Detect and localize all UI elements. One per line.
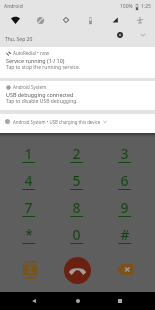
button[interactable]: 9	[103, 198, 145, 222]
staticText: 0	[72, 225, 81, 244]
staticText: AutoRedial • now	[13, 50, 49, 56]
staticText: 9	[120, 198, 129, 217]
staticText: 4	[24, 171, 33, 190]
button[interactable]: Backspace	[115, 263, 135, 276]
button[interactable]: Auto-rotate	[55, 13, 77, 27]
button[interactable]: End call	[64, 257, 91, 284]
staticText: Tap to stop the running service.	[6, 64, 81, 71]
button[interactable]: 8	[55, 198, 97, 222]
staticText: *	[25, 225, 33, 244]
button[interactable]: 4	[7, 171, 49, 195]
staticText: Tap to disable USB debugging.	[6, 98, 78, 105]
button[interactable]: Android System	[0, 81, 155, 110]
button[interactable]: 2	[55, 144, 97, 168]
staticText: 1	[24, 144, 33, 163]
staticText: 1:25	[141, 3, 151, 10]
staticText: 100%	[120, 3, 133, 10]
button[interactable]: Contacts	[22, 259, 38, 281]
button[interactable]: AutoRedial • now	[0, 47, 155, 78]
button[interactable]: 6	[103, 171, 145, 195]
button[interactable]: Home	[69, 293, 87, 309]
staticText: Android	[4, 3, 23, 10]
button[interactable]: 7	[7, 198, 49, 222]
button[interactable]: Recents	[111, 293, 129, 309]
button[interactable]: Back	[25, 293, 43, 309]
button[interactable]: Settings	[114, 29, 125, 40]
staticText: 6	[120, 171, 129, 190]
staticText: Android System • USB charging this devic…	[13, 119, 101, 125]
button[interactable]: 3	[103, 144, 145, 168]
button[interactable]: Android System • USB charging this devic…	[0, 114, 155, 133]
staticText: Service running (1 / 10)	[6, 57, 65, 64]
staticText: 8	[72, 198, 81, 217]
button[interactable]: 0	[55, 225, 97, 249]
button[interactable]: Battery saver	[79, 13, 101, 27]
button[interactable]: Collapse	[137, 29, 148, 40]
button[interactable]: Do not disturb	[29, 13, 51, 27]
button[interactable]: Mobile data	[104, 13, 126, 27]
button[interactable]: 5	[55, 171, 97, 195]
staticText: Thu, Sep 20	[5, 36, 33, 43]
staticText: 5	[72, 171, 81, 190]
button[interactable]: 1	[7, 144, 49, 168]
button[interactable]: *	[7, 225, 49, 249]
staticText: #	[120, 225, 130, 244]
button[interactable]: Airplane mode	[129, 13, 151, 27]
button[interactable]: #	[103, 225, 145, 249]
staticText: USB debugging connected	[6, 91, 74, 98]
staticText: 2	[72, 144, 81, 163]
button[interactable]: Wi-Fi	[4, 13, 26, 27]
staticText: 3	[120, 144, 129, 163]
staticText: Android System	[13, 84, 47, 90]
staticText: 7	[24, 198, 33, 217]
